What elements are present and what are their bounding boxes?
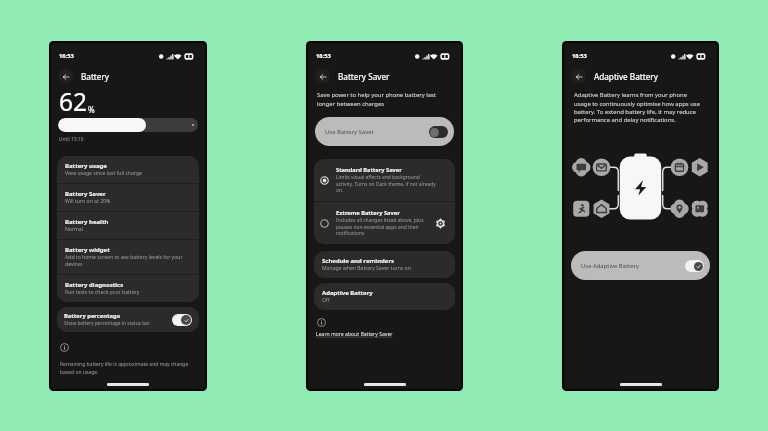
staticText: 16:53 (316, 52, 331, 60)
button[interactable]: Battery Saver (57, 184, 199, 212)
staticText: Use Battery Saver (325, 128, 374, 136)
staticText: Run tests to check your battery (65, 289, 140, 296)
button[interactable]: Extreme Battery Saver (314, 202, 455, 244)
staticText: Battery widget (65, 246, 110, 254)
staticText: Normal (65, 226, 83, 233)
button[interactable]: Adaptive Battery (314, 283, 455, 310)
staticText: Remaining battery life is approximate an… (60, 361, 194, 375)
button[interactable]: Use Battery Saver (315, 117, 454, 146)
button[interactable]: Use Adaptive Battery (571, 251, 710, 280)
staticText: View usage since last full charge (65, 170, 142, 177)
staticText: Battery percentage (64, 312, 121, 320)
staticText: Battery (81, 71, 110, 82)
button[interactable]: Battery percentage (57, 307, 199, 332)
button[interactable]: Schedule and reminders (314, 251, 455, 278)
staticText: % (88, 104, 95, 115)
staticText: Limits visual effects and background act… (336, 174, 436, 194)
staticText: Add to home screen to see battery levels… (65, 254, 190, 268)
button[interactable]: Battery widget (57, 240, 199, 275)
staticText: Extreme Battery Saver (336, 209, 400, 217)
staticText: 16:53 (59, 52, 74, 60)
staticText: Until 15:10 (59, 136, 84, 143)
staticText: Use Adaptive Battery (581, 262, 639, 270)
button[interactable]: Battery usage (57, 156, 199, 184)
staticText: Battery Saver (338, 71, 390, 82)
staticText: Show battery percentage in status bar (64, 320, 150, 327)
staticText: Off (322, 297, 330, 304)
button[interactable]: Settings (433, 216, 447, 230)
staticText: Manage when Battery Saver turns on (322, 265, 411, 272)
staticText: Schedule and reminders (322, 257, 395, 265)
staticText: Adaptive Battery (322, 289, 373, 297)
staticText: Will turn on at 20% (65, 198, 111, 205)
staticText: Battery Saver (65, 190, 106, 198)
staticText: 16:53 (572, 52, 587, 60)
staticText: Adaptive Battery (594, 71, 658, 82)
button[interactable]: Back (315, 69, 330, 84)
button[interactable]: Battery health (57, 212, 199, 240)
staticText: Save power to help your phone battery la… (317, 91, 452, 107)
staticText: Battery usage (65, 162, 107, 170)
staticText: Battery diagnostics (65, 281, 124, 289)
staticText: Standard Battery Saver (336, 166, 402, 174)
button[interactable]: Back (571, 69, 586, 84)
button[interactable]: Battery diagnostics (57, 275, 199, 302)
staticText: Adaptive Battery learns from your phone … (574, 91, 703, 123)
staticText: 62 (59, 85, 88, 118)
staticText: Battery health (65, 218, 109, 226)
button[interactable]: Learn more about Battery Saver (316, 331, 393, 338)
button[interactable]: Back (58, 69, 73, 84)
button[interactable]: Standard Battery Saver (314, 159, 455, 201)
staticText: Includes all changes listed above, plus … (336, 217, 431, 237)
